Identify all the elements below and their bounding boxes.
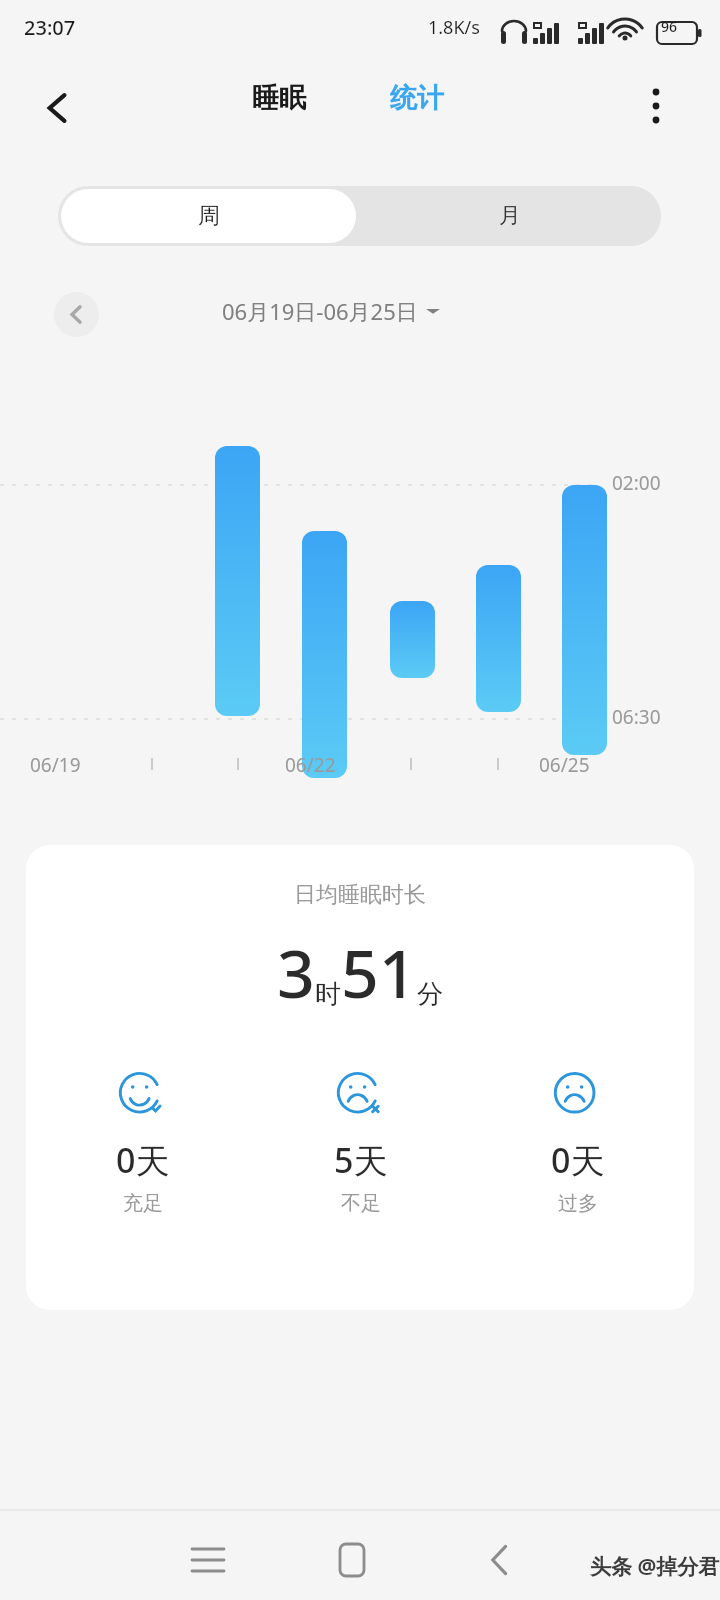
button[interactable]: 不足: [272, 1067, 450, 1216]
staticText: 02:00: [612, 470, 661, 496]
staticText: 睡眠: [252, 81, 306, 115]
staticText: 不足: [341, 1191, 381, 1216]
button[interactable]: 过多: [489, 1067, 667, 1216]
staticText: 周: [198, 202, 220, 230]
staticText: 0天: [551, 1137, 605, 1183]
staticText: 3: [277, 927, 315, 1017]
button[interactable]: 日均睡眠时长: [26, 845, 694, 1310]
staticText: 06:30: [612, 704, 661, 730]
other: 充足: [115, 1067, 171, 1123]
button[interactable]: Recent apps: [168, 1520, 248, 1600]
other: 过多: [550, 1067, 606, 1123]
button[interactable]: Home: [312, 1520, 392, 1600]
staticText: 23:07: [24, 14, 76, 41]
button[interactable]: 统计: [390, 81, 444, 115]
staticText: 51: [341, 927, 417, 1017]
staticText: 96: [661, 17, 678, 36]
button[interactable]: Back: [26, 76, 90, 140]
staticText: 时: [315, 978, 341, 1011]
button[interactable]: Back: [460, 1520, 540, 1600]
button[interactable]: 06月19日-06月25日: [222, 296, 440, 326]
staticText: 06/22: [285, 752, 336, 778]
staticText: 日均睡眠时长: [26, 881, 694, 909]
staticText: 5天: [334, 1137, 388, 1183]
button[interactable]: 充足: [54, 1067, 232, 1216]
staticText: 06/19: [30, 752, 81, 778]
staticText: 过多: [558, 1191, 598, 1216]
staticText: 06月19日-06月25日: [222, 296, 418, 326]
staticText: 06/25: [539, 752, 590, 778]
staticText: 头条 @掉分君: [590, 1552, 720, 1581]
staticText: 1.8K/s: [428, 15, 480, 40]
other: 不足: [333, 1067, 389, 1123]
staticText: 分: [417, 978, 443, 1011]
staticText: 统计: [390, 81, 444, 115]
staticText: 0天: [116, 1137, 170, 1183]
button[interactable]: 周: [61, 189, 356, 243]
button[interactable]: Previous week: [54, 292, 99, 337]
staticText: 充足: [123, 1191, 163, 1216]
button[interactable]: 月: [358, 186, 661, 246]
button[interactable]: 睡眠: [252, 81, 306, 115]
button[interactable]: More options: [626, 76, 686, 136]
staticText: 月: [499, 202, 521, 230]
